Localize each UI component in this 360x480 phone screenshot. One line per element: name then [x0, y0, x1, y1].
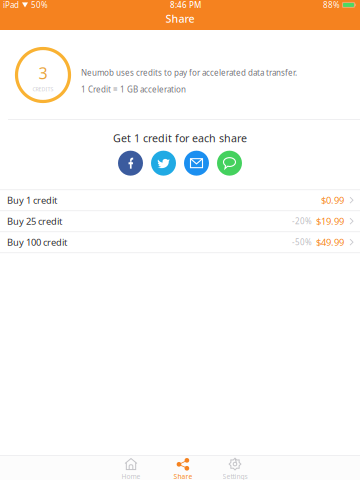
button[interactable]: Buy 25 credit: [0, 211, 360, 232]
staticText: $19.99: [316, 215, 344, 227]
button[interactable]: Share on Facebook: [114, 149, 147, 177]
staticText: CREDITS: [32, 86, 53, 93]
staticText: Buy 25 credit: [7, 215, 62, 227]
button[interactable]: Share by Message: [213, 149, 246, 177]
button[interactable]: Home: [105, 455, 157, 480]
button[interactable]: Share by Email: [180, 149, 213, 177]
button[interactable]: Buy 100 credit: [0, 232, 360, 253]
staticText: Share: [173, 472, 192, 480]
staticText: -20%: [292, 216, 312, 226]
staticText: -50%: [292, 237, 312, 247]
staticText: Share: [165, 11, 194, 26]
staticText: Buy 1 credit: [7, 194, 57, 206]
staticText: Settings: [222, 472, 247, 480]
button[interactable]: Buy 1 credit: [0, 190, 360, 211]
staticText: 50%: [31, 0, 48, 10]
button[interactable]: Settings: [209, 455, 261, 480]
staticText: iPad: [3, 0, 19, 10]
staticText: Neumob uses credits to pay for accelerat…: [81, 67, 297, 78]
staticText: Buy 100 credit: [7, 236, 67, 248]
button[interactable]: Share: [157, 455, 209, 480]
staticText: Home: [121, 472, 140, 480]
staticText: 1 Credit = 1 GB acceleration: [81, 84, 186, 95]
staticText: Get 1 credit for each share: [113, 131, 247, 145]
staticText: $0.99: [321, 194, 344, 206]
staticText: 3: [38, 62, 47, 84]
staticText: $49.99: [316, 236, 344, 248]
staticText: 8:46 PM: [170, 0, 201, 10]
button[interactable]: Share on Twitter: [147, 149, 180, 177]
staticText: 88%: [323, 0, 340, 10]
